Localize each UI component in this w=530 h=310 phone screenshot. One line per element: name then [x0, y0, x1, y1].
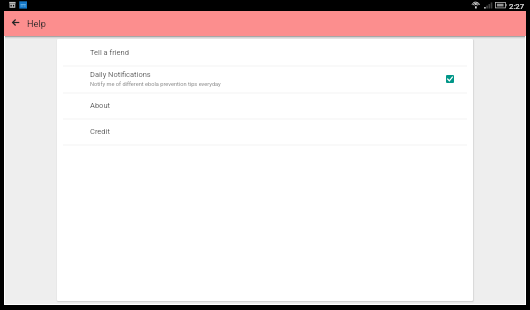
staticText: Tell a friend — [90, 48, 129, 57]
button[interactable]: Back — [9, 16, 23, 30]
button[interactable]: Credit — [57, 118, 473, 144]
staticText: About — [90, 101, 110, 110]
staticText: Daily Notifications — [90, 70, 151, 79]
staticText: Notify me of different ebola prevention … — [90, 81, 221, 88]
staticText: Help — [27, 18, 46, 29]
staticText: Credit — [90, 127, 110, 136]
button[interactable]: Daily notifications checkbox — [446, 75, 454, 83]
button[interactable]: About — [57, 92, 473, 118]
staticText: 2:27 — [509, 2, 525, 11]
button[interactable]: Daily Notifications — [57, 65, 473, 92]
button[interactable]: Tell a friend — [57, 39, 473, 65]
